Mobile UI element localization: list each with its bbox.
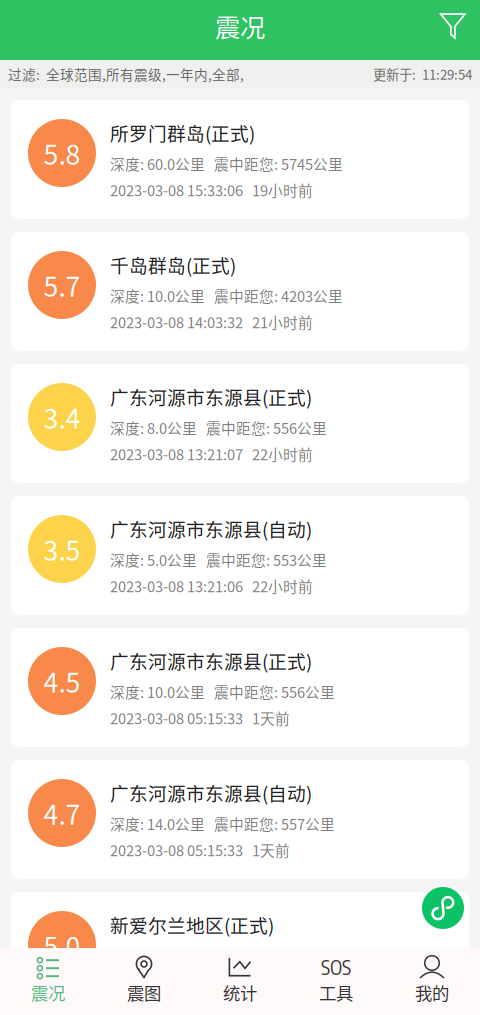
staticText: 深度: 10.0公里 震中距您: 556公里: [110, 681, 335, 702]
staticText: 统计: [223, 980, 257, 1005]
staticText: 2023-03-08 03:02:11 1天前: [110, 971, 290, 992]
staticText: 深度: 8.0公里 震中距您: 556公里: [110, 417, 327, 438]
staticText: 2023-03-08 14:03:32 21小时前: [110, 311, 313, 332]
staticText: 2023-03-08 15:33:06 19小时前: [110, 179, 313, 200]
button[interactable]: 统计: [192, 948, 288, 1015]
staticText: SOS: [321, 954, 351, 979]
staticText: 深度: 14.0公里 震中距您: 557公里: [110, 813, 335, 834]
staticText: 5.0: [43, 926, 80, 964]
staticText: 4.7: [43, 794, 80, 832]
button[interactable]: 小程序: [422, 887, 464, 929]
staticText: 深度: 60.0公里 震中距您: 5745公里: [110, 153, 343, 174]
staticText: 3.5: [43, 530, 80, 568]
staticText: 5.7: [43, 266, 80, 304]
staticText: 深度: 10.0公里 震中距您: 5000公里: [110, 945, 343, 966]
button[interactable]: 5.7: [11, 232, 469, 351]
staticText: 过滤: 全球范围,所有震级,一年内,全部,: [8, 64, 244, 84]
button[interactable]: 4.7: [11, 760, 469, 879]
staticText: 千岛群岛(正式): [110, 251, 236, 278]
staticText: 2023-03-08 05:15:33 1天前: [110, 839, 290, 860]
button[interactable]: 我的: [384, 948, 480, 1015]
staticText: 广东河源市东源县(正式): [110, 383, 312, 410]
staticText: 3.4: [43, 398, 80, 436]
staticText: 4.5: [43, 662, 80, 700]
button[interactable]: 3.5: [11, 496, 469, 615]
staticText: 震况: [215, 8, 265, 44]
button[interactable]: 5.8: [11, 100, 469, 219]
staticText: 广东河源市东源县(正式): [110, 647, 312, 674]
button[interactable]: 震图: [96, 948, 192, 1015]
button[interactable]: 震况: [0, 948, 96, 1015]
staticText: 2023-03-08 13:21:06 22小时前: [110, 575, 313, 596]
button[interactable]: 筛选: [426, 0, 480, 60]
staticText: 震图: [127, 980, 161, 1005]
staticText: 5.8: [43, 134, 80, 172]
staticText: 2023-03-08 13:21:07 22小时前: [110, 443, 313, 464]
button[interactable]: SOS: [288, 948, 384, 1015]
staticText: 新爱尔兰地区(正式): [110, 911, 274, 938]
staticText: 震况: [31, 980, 65, 1005]
button[interactable]: 3.4: [11, 364, 469, 483]
staticText: 工具: [319, 980, 353, 1005]
staticText: 深度: 5.0公里 震中距您: 553公里: [110, 549, 327, 570]
staticText: 广东河源市东源县(自动): [110, 515, 312, 542]
staticText: 更新于: 11:29:54: [373, 64, 472, 84]
staticText: 我的: [415, 980, 449, 1005]
staticText: 深度: 10.0公里 震中距您: 4203公里: [110, 285, 343, 306]
staticText: 广东河源市东源县(自动): [110, 779, 312, 806]
staticText: 2023-03-08 05:15:33 1天前: [110, 707, 290, 728]
button[interactable]: 4.5: [11, 628, 469, 747]
button[interactable]: 5.0: [11, 892, 469, 1011]
staticText: 所罗门群岛(正式): [110, 119, 255, 146]
